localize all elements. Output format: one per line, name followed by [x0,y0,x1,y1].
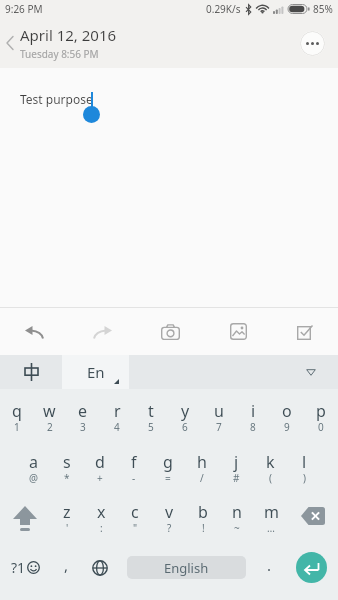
staticText: + [97,471,103,485]
staticText: y [181,400,190,422]
staticText: j [234,451,239,473]
button[interactable]: g [151,440,185,490]
button[interactable]: t [134,389,168,440]
button[interactable] [82,538,118,597]
button[interactable]: n [220,490,254,541]
staticText: Tuesday 8:56 PM [20,47,99,61]
staticText: " [133,521,138,535]
staticText: / [200,471,204,485]
button[interactable]: . [255,538,284,597]
button[interactable]: , [50,538,82,597]
button[interactable]: a [17,440,50,490]
staticText: a [29,451,38,473]
staticText: ) [303,471,306,485]
button[interactable] [300,31,325,56]
button[interactable]: p [304,389,338,440]
button[interactable]: m [254,490,288,541]
staticText: k [266,451,275,473]
staticText: = [165,471,171,485]
staticText: 0 [318,420,324,434]
staticText: 6 [182,420,188,434]
staticText: . [267,555,272,575]
button[interactable] [68,308,136,355]
staticText: z [63,501,71,523]
staticText: l [302,451,307,473]
staticText: 0.29K/s [206,2,241,16]
staticText: n [232,501,242,523]
button[interactable] [136,308,204,355]
button[interactable]: ?1 [0,538,50,597]
staticText: 9:26 PM [5,2,43,16]
staticText: - [132,471,136,485]
button[interactable]: j [219,440,253,490]
button[interactable] [0,308,68,355]
button[interactable] [0,490,50,541]
button[interactable]: w [33,389,66,440]
staticText: ~ [234,521,240,535]
staticText: En [87,362,105,382]
staticText: 85% [313,2,333,16]
button[interactable]: y [168,389,202,440]
button[interactable]: s [50,440,83,490]
button[interactable]: u [202,389,236,440]
staticText: q [12,400,22,422]
staticText: English [164,559,209,577]
button[interactable] [288,490,338,541]
staticText: 7 [216,420,222,434]
staticText: 3 [80,420,86,434]
button[interactable] [284,538,338,597]
button[interactable]: e [66,389,100,440]
staticText: Test purpose [20,91,93,107]
staticText: ( [269,471,272,485]
staticText: b [198,501,208,523]
staticText: m [264,501,279,523]
staticText: ?1 [11,558,26,577]
button[interactable]: o [270,389,304,440]
staticText: 5 [148,420,154,434]
button[interactable]: x [84,490,118,541]
staticText: ? [167,521,172,535]
staticText: t [148,400,154,422]
staticText: i [251,400,256,422]
button[interactable] [272,308,338,355]
button[interactable]: d [83,440,117,490]
staticText: e [78,400,88,422]
staticText: : [100,521,103,535]
button[interactable] [284,355,338,389]
staticText: o [282,400,292,422]
button[interactable]: b [186,490,220,541]
button[interactable]: En [62,355,129,389]
button[interactable]: k [253,440,287,490]
button[interactable]: z [50,490,84,541]
button[interactable]: h [185,440,219,490]
staticText: * [64,471,70,485]
staticText: s [63,451,71,473]
staticText: … [267,521,275,535]
button[interactable]: q [0,389,33,440]
staticText: f [131,451,137,473]
staticText: g [163,451,173,473]
staticText: p [316,400,326,422]
staticText: April 12, 2016 [20,25,117,45]
staticText: ' [66,521,69,535]
button[interactable]: Test purpose [0,68,338,307]
staticText: 4 [114,420,120,434]
button[interactable]: c [118,490,152,541]
staticText: x [97,501,106,523]
button[interactable] [0,355,62,389]
staticText: v [165,501,174,523]
button[interactable]: i [236,389,270,440]
staticText: 2 [47,420,53,434]
staticText: c [131,501,139,523]
button[interactable] [0,18,20,68]
button[interactable]: f [117,440,151,490]
button[interactable]: l [287,440,321,490]
button[interactable] [204,308,272,355]
staticText: d [95,451,105,473]
button[interactable]: English [127,556,246,579]
staticText: w [43,400,56,422]
button[interactable]: v [152,490,186,541]
staticText: ! [202,521,205,535]
button[interactable]: r [100,389,134,440]
staticText: 1 [14,420,20,434]
